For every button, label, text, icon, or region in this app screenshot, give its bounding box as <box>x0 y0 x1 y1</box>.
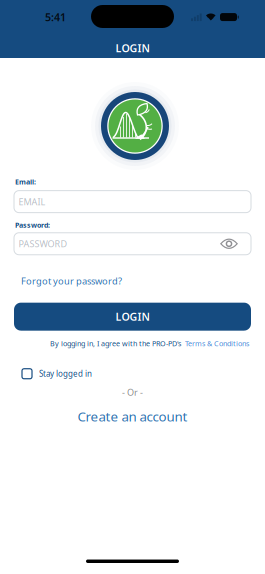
button[interactable]: LOGIN <box>14 303 251 331</box>
staticText: LOGIN <box>115 41 149 55</box>
staticText: PASSWORD <box>18 238 67 250</box>
button[interactable]: Password <box>14 233 251 255</box>
button[interactable]: Stay logged in <box>22 368 92 379</box>
staticText: LOGIN <box>115 310 149 324</box>
staticText: Email: <box>15 177 36 187</box>
staticText: Password: <box>15 220 50 230</box>
staticText: Create an account <box>77 407 187 425</box>
staticText: - Or - <box>122 386 143 398</box>
staticText: Stay logged in <box>39 368 92 379</box>
staticText: Forgot your password? <box>21 275 122 287</box>
button[interactable]: Forgot your password? <box>21 275 122 287</box>
staticText: By logging in, I agree with the PRO-PD's <box>50 339 181 348</box>
button[interactable]: Email <box>14 191 251 213</box>
staticText: EMAIL <box>18 195 45 208</box>
button[interactable]: Show password <box>220 239 251 249</box>
button[interactable]: Create an account <box>77 407 187 425</box>
staticText: 5:41 <box>45 10 66 24</box>
button[interactable]: Terms & Conditions <box>185 339 249 348</box>
staticText: Terms & Conditions <box>185 339 249 348</box>
